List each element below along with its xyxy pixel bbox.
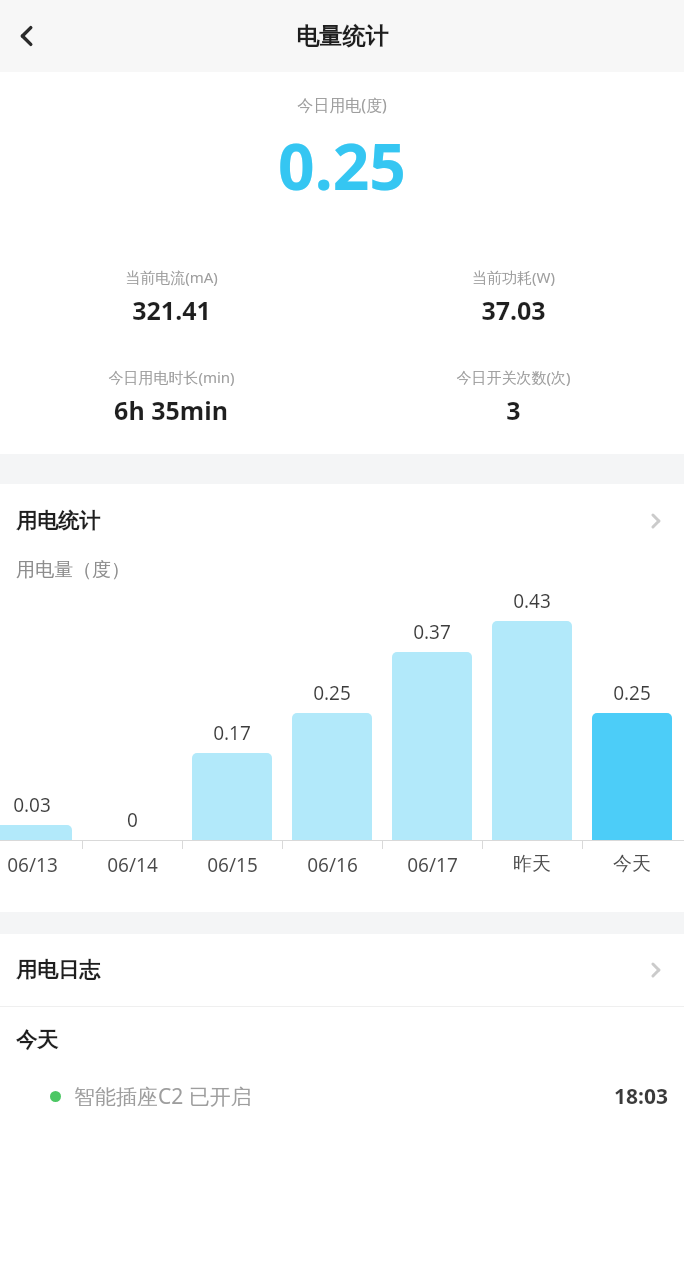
staticText: 18:03 (614, 1082, 668, 1111)
staticText: 用电日志 (16, 957, 100, 983)
staticText: 今日用电时长(min) (108, 367, 235, 387)
button[interactable]: 智能插座C2 已开启 (0, 1079, 684, 1114)
button[interactable]: 用电统计 (0, 484, 684, 558)
staticText: 用电统计 (16, 508, 100, 534)
staticText: 今日开关次数(次) (456, 367, 571, 387)
staticText: 0.37 (413, 619, 451, 645)
staticText: 06/14 (107, 852, 158, 878)
staticText: 0 (127, 807, 138, 833)
staticText: 06/16 (307, 852, 358, 878)
staticText: 昨天 (513, 852, 551, 876)
staticText: 当前功耗(W) (472, 267, 555, 287)
staticText: 0.03 (13, 792, 51, 818)
staticText: 今天 (613, 852, 651, 876)
staticText: 0.17 (213, 720, 251, 746)
staticText: 电量统计 (296, 22, 388, 51)
staticText: 今日用电(度) (0, 94, 684, 116)
button[interactable]: Back (0, 8, 56, 64)
staticText: 6h 35min (114, 393, 228, 427)
other: Open (642, 508, 668, 534)
staticText: 321.41 (132, 293, 211, 327)
staticText: 用电量（度） (16, 558, 130, 582)
staticText: 0.43 (513, 588, 551, 614)
staticText: 0.25 (0, 122, 684, 209)
staticText: 37.03 (481, 293, 546, 327)
staticText: 当前电流(mA) (125, 267, 218, 287)
staticText: 06/17 (407, 852, 458, 878)
staticText: 智能插座C2 已开启 (74, 1082, 252, 1111)
button[interactable]: 06/13 0.03 (0, 825, 72, 840)
staticText: 06/15 (207, 852, 258, 878)
staticText: 0.25 (613, 680, 651, 706)
staticText: 06/13 (7, 852, 58, 878)
button[interactable]: 今天 0.25 (592, 713, 672, 840)
other: Open (642, 957, 668, 983)
staticText: 0.25 (313, 680, 351, 706)
staticText: 3 (506, 393, 521, 427)
staticText: 今天 (16, 1027, 58, 1053)
button[interactable]: 用电日志 (0, 934, 684, 1006)
